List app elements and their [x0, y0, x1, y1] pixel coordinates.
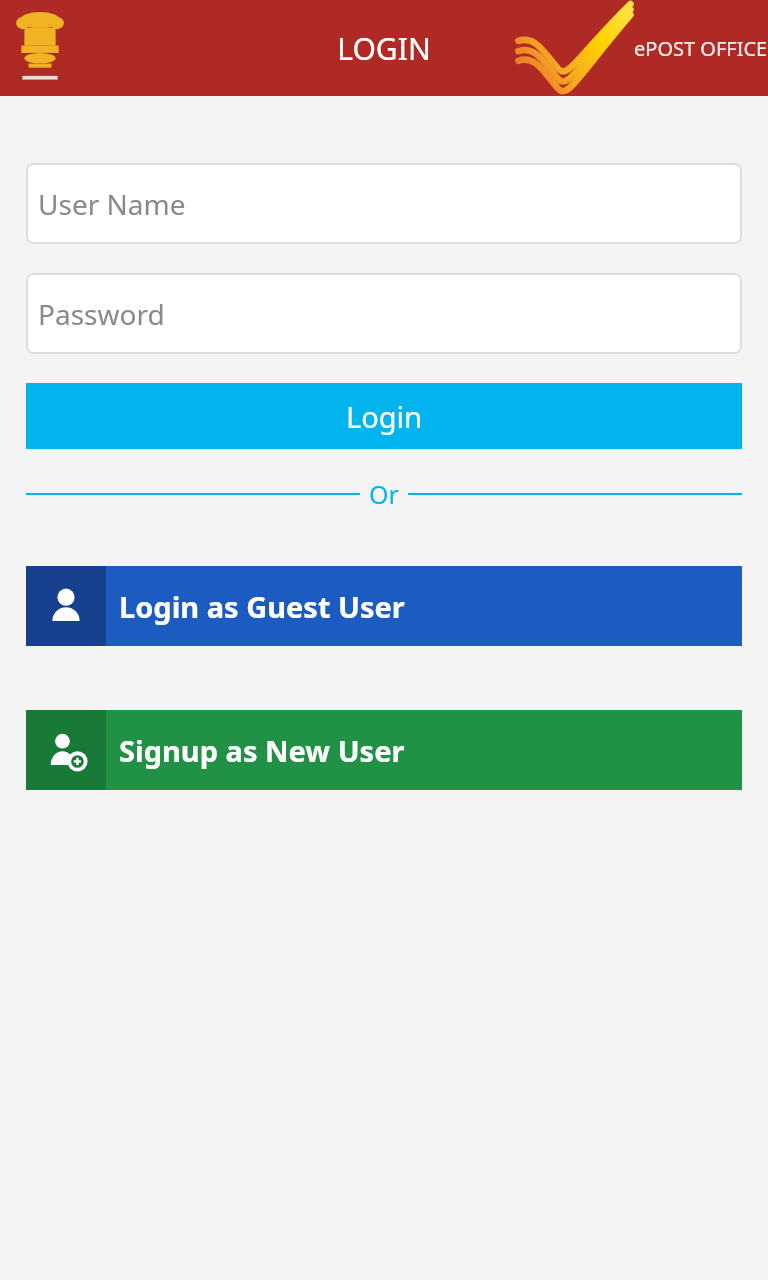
- staticText: ePOST OFFICE: [634, 35, 768, 62]
- staticText: Login: [346, 397, 422, 436]
- button[interactable]: Login: [26, 383, 742, 449]
- staticText: LOGIN: [337, 28, 431, 69]
- staticText: Or: [369, 477, 399, 511]
- button[interactable]: Password: [26, 273, 742, 354]
- staticText: User Name: [38, 185, 186, 223]
- staticText: Signup as New User: [119, 731, 405, 770]
- button[interactable]: Login as Guest User: [26, 566, 742, 646]
- other: National Emblem: [14, 7, 66, 89]
- staticText: Login as Guest User: [119, 587, 405, 626]
- button[interactable]: Signup as New User: [26, 710, 742, 790]
- other: India Post logo: [516, 4, 634, 92]
- staticText: Password: [38, 295, 165, 333]
- button[interactable]: User Name: [26, 163, 742, 244]
